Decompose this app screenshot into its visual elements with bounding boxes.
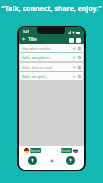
button[interactable]: Dictionary (69, 38, 74, 43)
staticText: “Talk, connect, share, enjoy.” (0, 4, 103, 14)
staticText: Hallo, wie geht... (22, 74, 72, 78)
button[interactable]: Russian (61, 148, 78, 153)
staticText: Title (28, 36, 37, 42)
button[interactable]: Record (28, 156, 37, 165)
staticText: German (30, 149, 41, 153)
staticText: Hello, how are you? (22, 65, 72, 69)
staticText: 9:41 (23, 30, 30, 34)
button[interactable]: German (24, 148, 41, 153)
button[interactable]: Settings (76, 38, 81, 43)
staticText: Russian (61, 149, 72, 153)
button[interactable]: Hey, what's up for... (20, 44, 83, 61)
button[interactable]: Hello, how are you? (20, 63, 83, 80)
button[interactable]: Title (22, 36, 37, 42)
button[interactable]: Swap languages (49, 158, 55, 164)
staticText: Hallo, was gibt es... (22, 55, 72, 59)
button[interactable]: Record (66, 156, 75, 165)
staticText: Hey, what's up for... (22, 46, 72, 50)
